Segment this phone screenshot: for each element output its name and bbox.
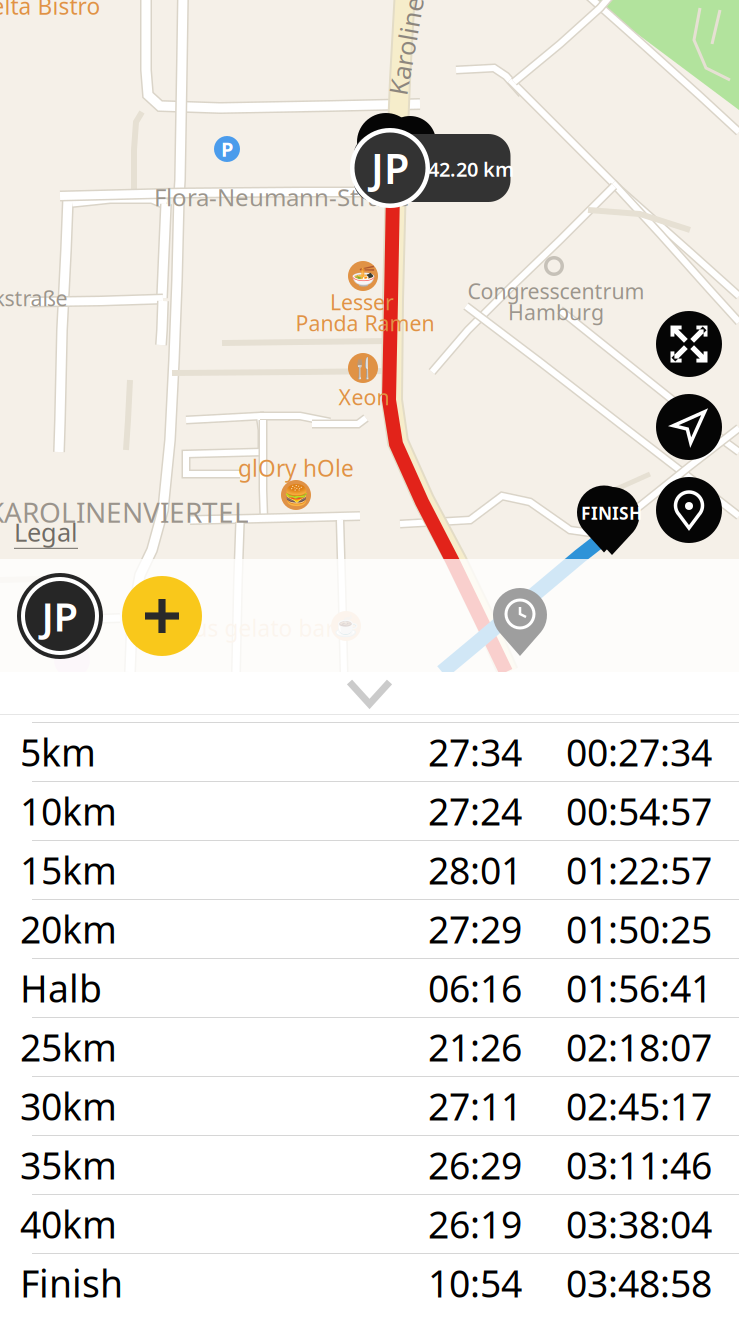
- button[interactable]: 15km: [0, 840, 739, 899]
- button[interactable]: Finish: [0, 1253, 739, 1312]
- staticText: Xeon: [338, 383, 389, 411]
- button[interactable]: 35km: [0, 1135, 739, 1194]
- staticText: 🍔: [283, 484, 308, 506]
- button[interactable]: 10km: [0, 781, 739, 840]
- staticText: 27:11: [428, 1081, 522, 1131]
- staticText: elta Bistro: [0, 0, 100, 21]
- staticText: 26:29: [428, 1140, 522, 1190]
- button[interactable]: 25km: [0, 1017, 739, 1076]
- staticText: 30km: [20, 1081, 117, 1131]
- staticText: 03:38:04: [566, 1199, 712, 1249]
- staticText: 10:54: [428, 1258, 522, 1308]
- staticText: Hamburg: [508, 298, 604, 326]
- staticText: JP: [371, 141, 409, 195]
- staticText: Flora-Neumann-Straße: [154, 181, 410, 213]
- staticText: Lesser: [330, 288, 394, 316]
- staticText: 🍴: [350, 357, 375, 379]
- staticText: Karoline: [356, 29, 455, 63]
- staticText: 5km: [20, 727, 96, 777]
- button[interactable]: 5km: [0, 722, 739, 781]
- staticText: 01:22:57: [566, 845, 712, 895]
- staticText: 01:50:25: [566, 904, 712, 954]
- staticText: KAROLINENVIERTEL: [0, 493, 249, 531]
- staticText: 28:01: [428, 845, 522, 895]
- staticText: 42.20 km: [428, 156, 514, 182]
- button[interactable]: 20km: [0, 899, 739, 958]
- staticText: Congresscentrum: [467, 277, 644, 305]
- staticText: 02:18:07: [566, 1022, 712, 1072]
- button[interactable]: Legal: [14, 515, 78, 549]
- button[interactable]: 30km: [0, 1076, 739, 1135]
- staticText: 26:19: [428, 1199, 522, 1249]
- staticText: 20km: [20, 904, 117, 954]
- staticText: 🍜: [350, 265, 375, 287]
- staticText: 03:48:58: [566, 1258, 712, 1308]
- staticText: 27:24: [428, 786, 522, 836]
- staticText: 10km: [20, 786, 117, 836]
- staticText: 06:16: [428, 963, 522, 1013]
- staticText: 00:27:34: [566, 727, 712, 777]
- staticText: rkstraße: [0, 284, 67, 312]
- staticText: Panda Ramen: [295, 309, 434, 337]
- button[interactable]: Expand map: [656, 311, 722, 377]
- staticText: 02:45:17: [566, 1081, 712, 1131]
- staticText: 01:56:41: [566, 963, 712, 1013]
- staticText: 15km: [20, 845, 117, 895]
- staticText: 27:29: [428, 904, 522, 954]
- staticText: 25km: [20, 1022, 117, 1072]
- staticText: 35km: [20, 1140, 117, 1190]
- staticText: FINISH: [581, 501, 642, 524]
- staticText: Finish: [20, 1258, 123, 1308]
- button[interactable]: Your profile: [17, 573, 103, 659]
- staticText: 00:54:57: [566, 786, 712, 836]
- staticText: 03:11:46: [566, 1140, 712, 1190]
- staticText: ☕: [333, 615, 358, 637]
- button[interactable]: Add: [122, 576, 202, 656]
- staticText: glOry hOle: [238, 453, 354, 483]
- button[interactable]: Navigate: [656, 394, 722, 460]
- staticText: us gelato bar: [193, 613, 334, 643]
- button[interactable]: Show location: [656, 477, 722, 543]
- button[interactable]: 40km: [0, 1194, 739, 1253]
- staticText: 27:34: [428, 727, 522, 777]
- staticText: 21:26: [428, 1022, 522, 1072]
- button[interactable]: Halb: [0, 958, 739, 1017]
- button[interactable]: Collapse map: [0, 672, 739, 714]
- staticText: Legal: [14, 515, 78, 549]
- staticText: 40km: [20, 1199, 117, 1249]
- staticText: P: [221, 136, 233, 162]
- staticText: JP: [41, 589, 78, 642]
- staticText: Halb: [20, 963, 102, 1013]
